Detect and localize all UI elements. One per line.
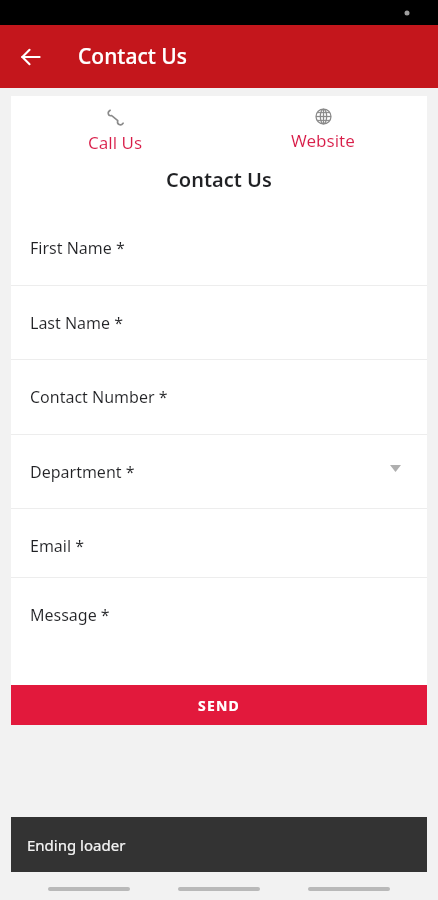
staticText: Website (291, 129, 355, 152)
staticText: Contact Number * (30, 386, 168, 408)
staticText: Contact Us (78, 42, 187, 71)
button[interactable]: Department * (11, 435, 427, 508)
staticText: Email * (30, 535, 85, 557)
staticText: Call Us (88, 131, 143, 154)
button[interactable]: Contact Number * (11, 360, 427, 434)
staticText: SEND (198, 696, 240, 715)
button[interactable]: Email * (11, 509, 427, 577)
staticText: Department * (30, 461, 135, 483)
button[interactable]: Back (10, 36, 52, 78)
button[interactable]: Website (219, 104, 427, 156)
staticText: First Name * (30, 237, 125, 259)
button[interactable]: First Name * (11, 211, 427, 285)
staticText: Last Name * (30, 312, 124, 334)
staticText: Ending loader (27, 835, 126, 855)
button[interactable]: Message * (11, 578, 427, 685)
button[interactable]: Last Name * (11, 286, 427, 359)
button[interactable]: SEND (11, 685, 427, 725)
button[interactable]: Call Us (11, 104, 219, 158)
staticText: Contact Us (11, 166, 427, 193)
staticText: Message * (30, 604, 110, 626)
